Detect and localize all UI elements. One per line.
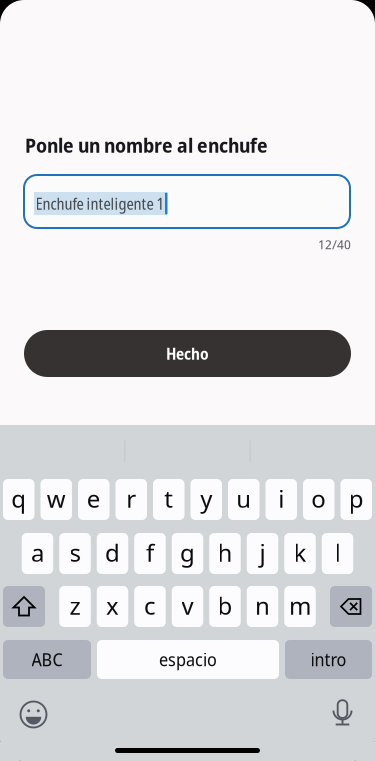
button[interactable]: g	[172, 533, 203, 574]
button[interactable]: q	[3, 479, 34, 520]
staticText: m	[289, 589, 311, 622]
staticText: y	[200, 482, 212, 515]
staticText: x	[106, 589, 119, 622]
staticText: Ponle un nombre al enchufe	[25, 131, 268, 159]
staticText: d	[105, 536, 120, 569]
button[interactable]: Hecho	[24, 330, 351, 377]
button[interactable]: j	[247, 533, 278, 574]
button[interactable]: x	[97, 586, 128, 627]
button[interactable]: b	[209, 586, 241, 627]
button[interactable]: k	[284, 533, 316, 574]
staticText: w	[47, 482, 66, 515]
staticText: a	[31, 536, 44, 569]
staticText: z	[69, 589, 80, 622]
staticText: l	[334, 536, 340, 569]
button[interactable]: r	[115, 479, 147, 520]
button[interactable]: p	[340, 479, 372, 520]
staticText: intro	[310, 648, 346, 671]
button[interactable]: t	[153, 479, 184, 520]
staticText: b	[217, 589, 232, 622]
button[interactable]: m	[284, 586, 316, 627]
staticText: g	[180, 536, 195, 569]
staticText: u	[236, 482, 251, 515]
button[interactable]: v	[172, 586, 203, 627]
staticText: s	[69, 536, 80, 569]
staticText: Hecho	[166, 343, 209, 364]
staticText: c	[144, 589, 156, 622]
staticText: q	[11, 482, 26, 515]
staticText: k	[293, 536, 306, 569]
staticText: t	[164, 482, 173, 515]
staticText: e	[87, 482, 101, 515]
button[interactable]: n	[247, 586, 278, 627]
button[interactable]: z	[59, 586, 91, 627]
staticText: i	[278, 482, 284, 515]
button[interactable]: Dictate	[332, 700, 352, 729]
staticText: h	[217, 536, 232, 569]
button[interactable]: h	[209, 533, 241, 574]
staticText: n	[255, 589, 270, 622]
button[interactable]: Shift	[3, 586, 45, 627]
staticText: f	[146, 536, 154, 569]
staticText: r	[126, 482, 136, 515]
button[interactable]: Delete	[330, 586, 372, 627]
button[interactable]: a	[22, 533, 53, 574]
button[interactable]: c	[134, 586, 166, 627]
staticText: o	[311, 482, 326, 515]
button[interactable]: e	[78, 479, 109, 520]
staticText: Enchufe inteligente 1	[35, 193, 163, 214]
staticText: v	[181, 589, 193, 622]
staticText: ABC	[31, 648, 62, 671]
staticText: 12/40	[318, 235, 351, 253]
button[interactable]: intro	[285, 640, 372, 679]
button[interactable]: l	[322, 533, 353, 574]
button[interactable]: d	[97, 533, 128, 574]
button[interactable]: y	[190, 479, 222, 520]
staticText: espacio	[159, 648, 217, 671]
button[interactable]: s	[59, 533, 91, 574]
button[interactable]: ABC	[3, 640, 91, 679]
button[interactable]: f	[134, 533, 166, 574]
staticText: j	[259, 536, 265, 569]
button[interactable]: i	[265, 479, 297, 520]
button[interactable]: espacio	[97, 640, 279, 679]
button[interactable]: w	[40, 479, 72, 520]
button[interactable]: Emoji keyboard	[18, 699, 48, 729]
button[interactable]: o	[303, 479, 334, 520]
button[interactable]: u	[228, 479, 259, 520]
staticText: p	[349, 482, 364, 515]
